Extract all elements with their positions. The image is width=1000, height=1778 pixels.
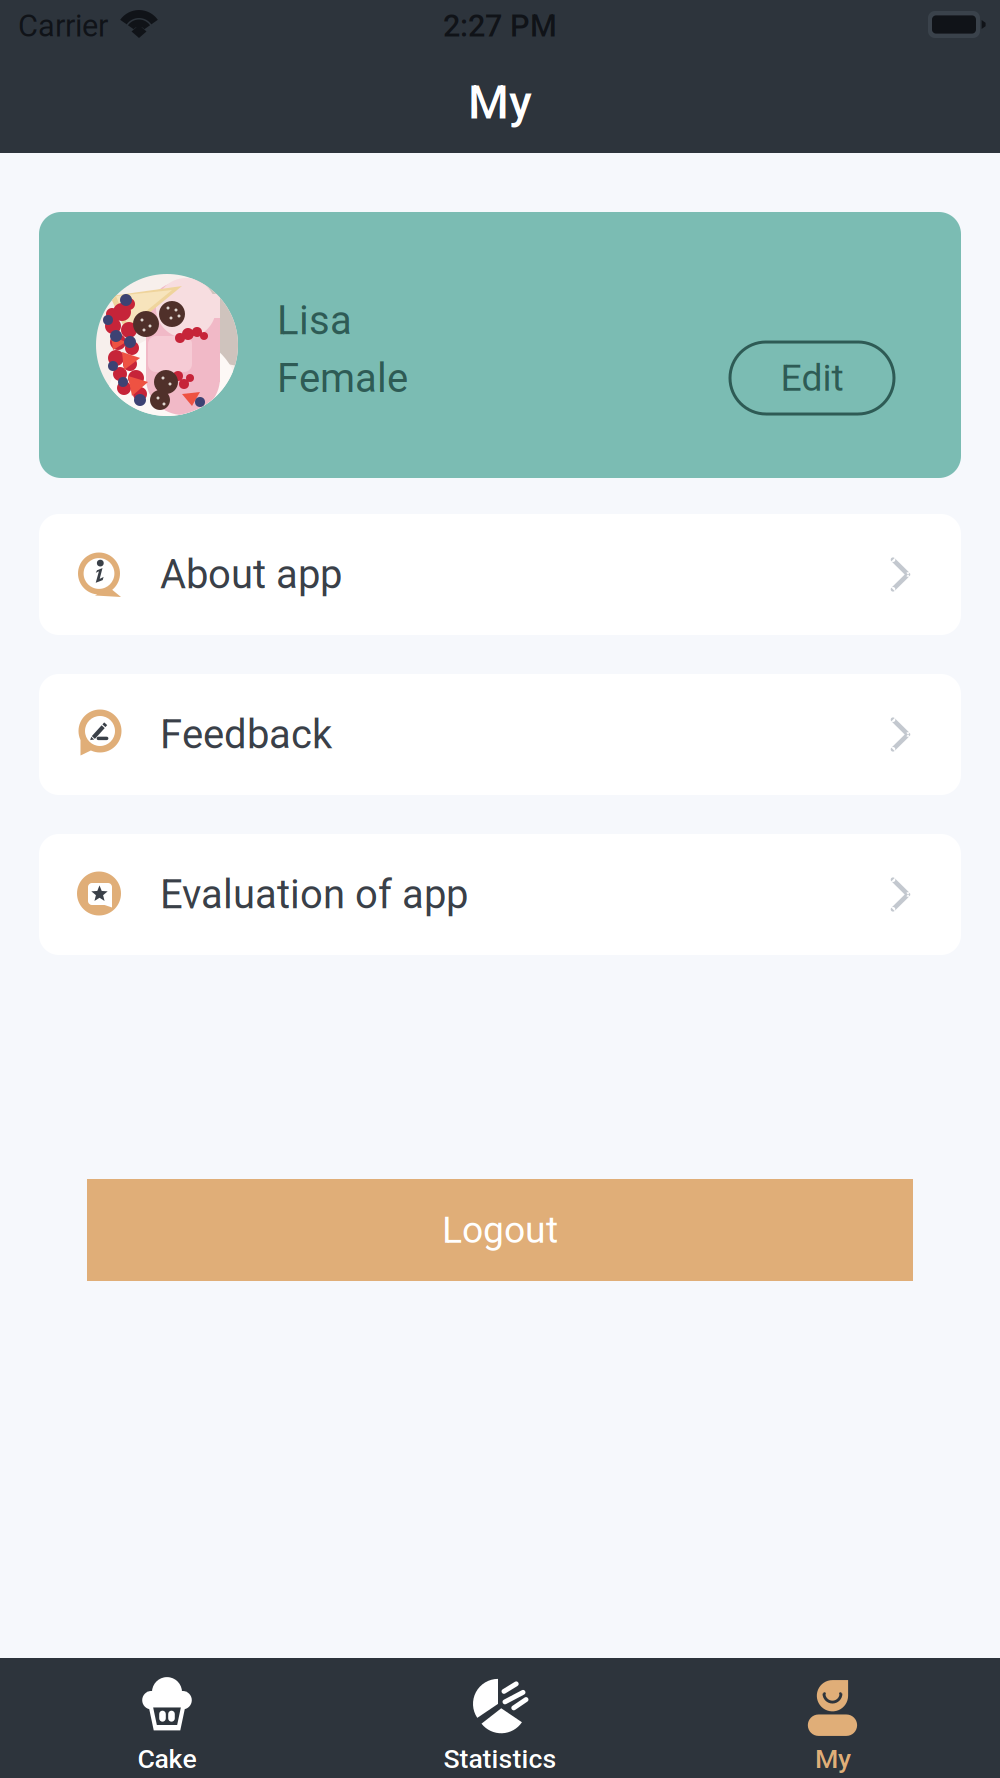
button[interactable]: Cake <box>0 1658 333 1778</box>
button[interactable]: Statistics <box>333 1658 666 1778</box>
button[interactable]: Logout <box>87 1179 913 1281</box>
staticText: Cake <box>137 1743 196 1775</box>
button[interactable]: Evaluation of app <box>39 834 961 955</box>
button[interactable]: My <box>666 1658 999 1778</box>
staticText: Feedback <box>160 711 332 758</box>
staticText: Statistics <box>443 1743 556 1775</box>
button[interactable]: Edit <box>730 342 894 414</box>
staticText: Lisa <box>277 297 352 344</box>
staticText: Carrier <box>18 8 108 44</box>
button[interactable]: About app <box>39 514 961 635</box>
staticText: Logout <box>442 1208 558 1252</box>
button[interactable]: Feedback <box>39 674 961 795</box>
staticText: Edit <box>780 356 843 400</box>
staticText: 2:27 PM <box>443 8 557 44</box>
staticText: Female <box>277 355 408 402</box>
staticText: Evaluation of app <box>160 871 468 918</box>
staticText: My <box>815 1743 851 1775</box>
staticText: About app <box>160 551 342 598</box>
staticText: My <box>468 75 532 130</box>
